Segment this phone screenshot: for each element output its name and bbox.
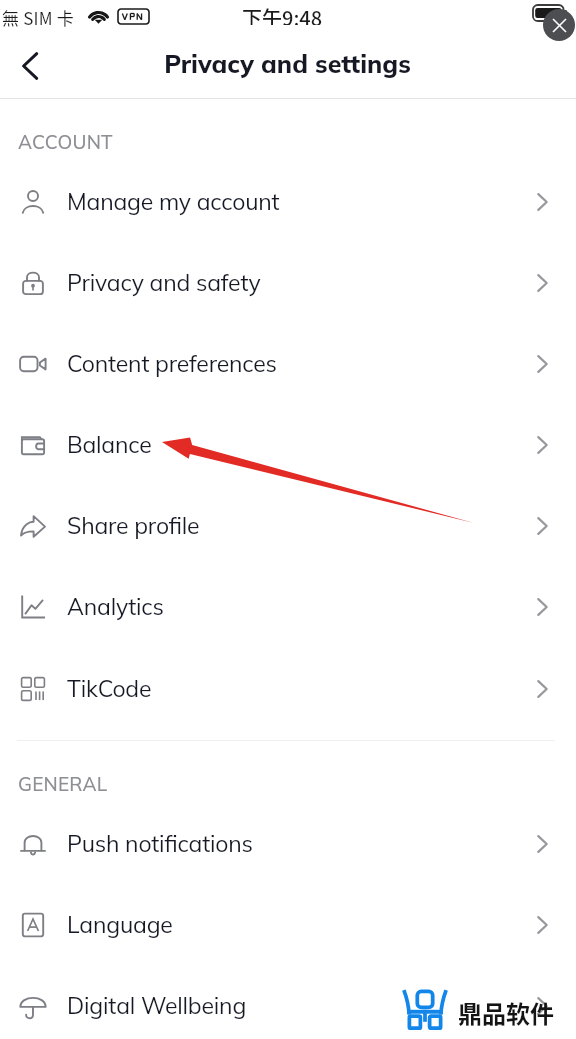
button[interactable]: Balance [0,404,576,485]
button[interactable]: Privacy and safety [0,242,576,323]
staticText: Privacy and safety [67,268,261,297]
staticText: ACCOUNT [18,130,113,154]
staticText: 鼎品软件 [458,995,554,1028]
staticText: 無 SIM 卡 [2,5,74,27]
button[interactable]: Analytics [0,566,576,647]
button[interactable]: Language [0,884,576,965]
staticText: Analytics [67,592,164,621]
staticText: Privacy and settings [164,48,411,79]
button[interactable]: Share profile [0,485,576,566]
button[interactable]: TikCode [0,648,576,729]
staticText: Language [67,910,173,939]
staticText: Share profile [67,511,200,540]
staticText: Content preferences [67,349,277,378]
staticText: 下午9:48 [242,3,323,25]
button[interactable]: Digital Wellbeing [0,965,576,1039]
staticText: Digital Wellbeing [67,991,247,1020]
button[interactable]: Push notifications [0,803,576,884]
staticText: TikCode [67,674,152,703]
button[interactable]: Back [6,42,54,90]
button[interactable]: Content preferences [0,323,576,404]
staticText: Manage my account [67,187,280,216]
staticText: GENERAL [18,772,108,796]
staticText: Balance [67,430,152,459]
button[interactable]: Manage my account [0,161,576,242]
staticText: Push notifications [67,829,253,858]
button[interactable]: Close [543,9,575,41]
